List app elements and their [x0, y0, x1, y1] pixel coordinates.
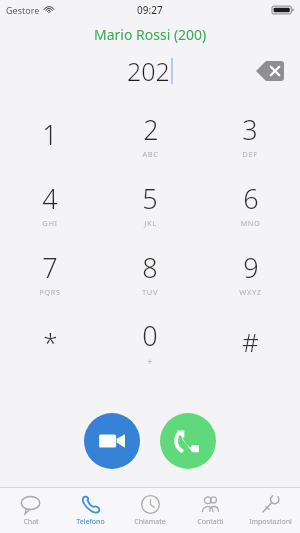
- staticText: Chat: [23, 517, 39, 527]
- staticText: Telefono: [76, 517, 105, 527]
- staticText: PQRS: [39, 287, 61, 297]
- staticText: TUV: [142, 287, 158, 297]
- staticText: JKL: [144, 218, 157, 228]
- button[interactable]: 4: [0, 169, 100, 238]
- button[interactable]: *: [0, 307, 100, 376]
- staticText: 3: [242, 111, 258, 148]
- button[interactable]: 7: [0, 238, 100, 307]
- staticText: ABC: [142, 149, 159, 159]
- button[interactable]: 5: [100, 169, 200, 238]
- button[interactable]: Cancella: [254, 58, 286, 84]
- staticText: 0: [142, 317, 158, 354]
- button[interactable]: Impostazioni: [240, 488, 300, 533]
- staticText: 4: [42, 180, 58, 217]
- staticText: Contatti: [197, 517, 224, 527]
- button[interactable]: 8: [100, 238, 200, 307]
- button[interactable]: #: [200, 307, 300, 376]
- staticText: Impostazioni: [249, 517, 292, 527]
- staticText: 7: [42, 249, 58, 286]
- button[interactable]: Chiama: [160, 413, 216, 469]
- button[interactable]: 6: [200, 169, 300, 238]
- staticText: Gestore: [6, 4, 40, 16]
- staticText: GHI: [42, 218, 58, 228]
- button[interactable]: Telefono: [60, 488, 120, 533]
- button[interactable]: Chiamate: [120, 488, 180, 533]
- staticText: 202: [127, 54, 170, 88]
- button[interactable]: Contatti: [180, 488, 240, 533]
- staticText: #: [242, 324, 259, 359]
- staticText: *: [43, 324, 58, 359]
- staticText: +: [147, 355, 153, 367]
- staticText: Chiamate: [134, 517, 166, 527]
- staticText: 2: [143, 111, 159, 148]
- staticText: 5: [142, 180, 158, 217]
- button[interactable]: 0: [100, 307, 200, 376]
- staticText: MNO: [240, 218, 261, 228]
- button[interactable]: 1: [0, 100, 100, 169]
- staticText: 8: [142, 249, 158, 286]
- staticText: 6: [243, 180, 259, 217]
- button[interactable]: Chat: [0, 488, 60, 533]
- button[interactable]: 3: [200, 100, 300, 169]
- staticText: Mario Rossi (200): [94, 25, 207, 44]
- button[interactable]: Videochiamata: [84, 413, 140, 469]
- staticText: 1: [42, 116, 58, 153]
- button[interactable]: 9: [200, 238, 300, 307]
- staticText: WXYZ: [239, 287, 262, 297]
- staticText: 09:27: [137, 3, 163, 17]
- button[interactable]: 2: [100, 100, 200, 169]
- staticText: 9: [243, 249, 259, 286]
- staticText: DEF: [242, 149, 258, 159]
